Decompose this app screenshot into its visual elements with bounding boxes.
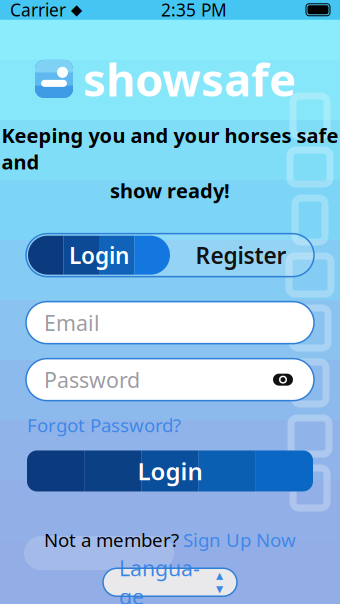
button[interactable]: Login bbox=[27, 450, 313, 491]
staticText: Sign Up Now bbox=[183, 527, 296, 552]
staticText: showsafe bbox=[83, 49, 296, 109]
staticText: Password bbox=[44, 365, 140, 394]
staticText: Login bbox=[69, 240, 129, 270]
button[interactable]: Show password bbox=[270, 369, 296, 391]
staticText: ◆ bbox=[71, 1, 82, 18]
staticText: Keeping you and your horses safe and bbox=[1, 122, 338, 175]
staticText: Email bbox=[44, 308, 100, 337]
staticText: Forgot Password? bbox=[27, 413, 181, 437]
staticText: Register bbox=[195, 240, 286, 270]
staticText: Login bbox=[137, 455, 202, 487]
staticText: ▼ bbox=[216, 584, 223, 594]
button[interactable]: Language bbox=[103, 568, 237, 596]
staticText: Carrier bbox=[10, 0, 66, 21]
button[interactable]: Login bbox=[28, 236, 170, 275]
button[interactable]: Forgot Password? bbox=[27, 413, 181, 437]
staticText: Language bbox=[119, 554, 200, 604]
staticText: 2:35 PM bbox=[161, 0, 227, 21]
staticText: ▲ bbox=[216, 570, 223, 581]
staticText: Not a member? bbox=[44, 527, 179, 552]
button[interactable]: Sign Up Now bbox=[183, 527, 296, 552]
staticText: show ready! bbox=[110, 177, 230, 204]
button[interactable]: Register bbox=[170, 236, 312, 275]
